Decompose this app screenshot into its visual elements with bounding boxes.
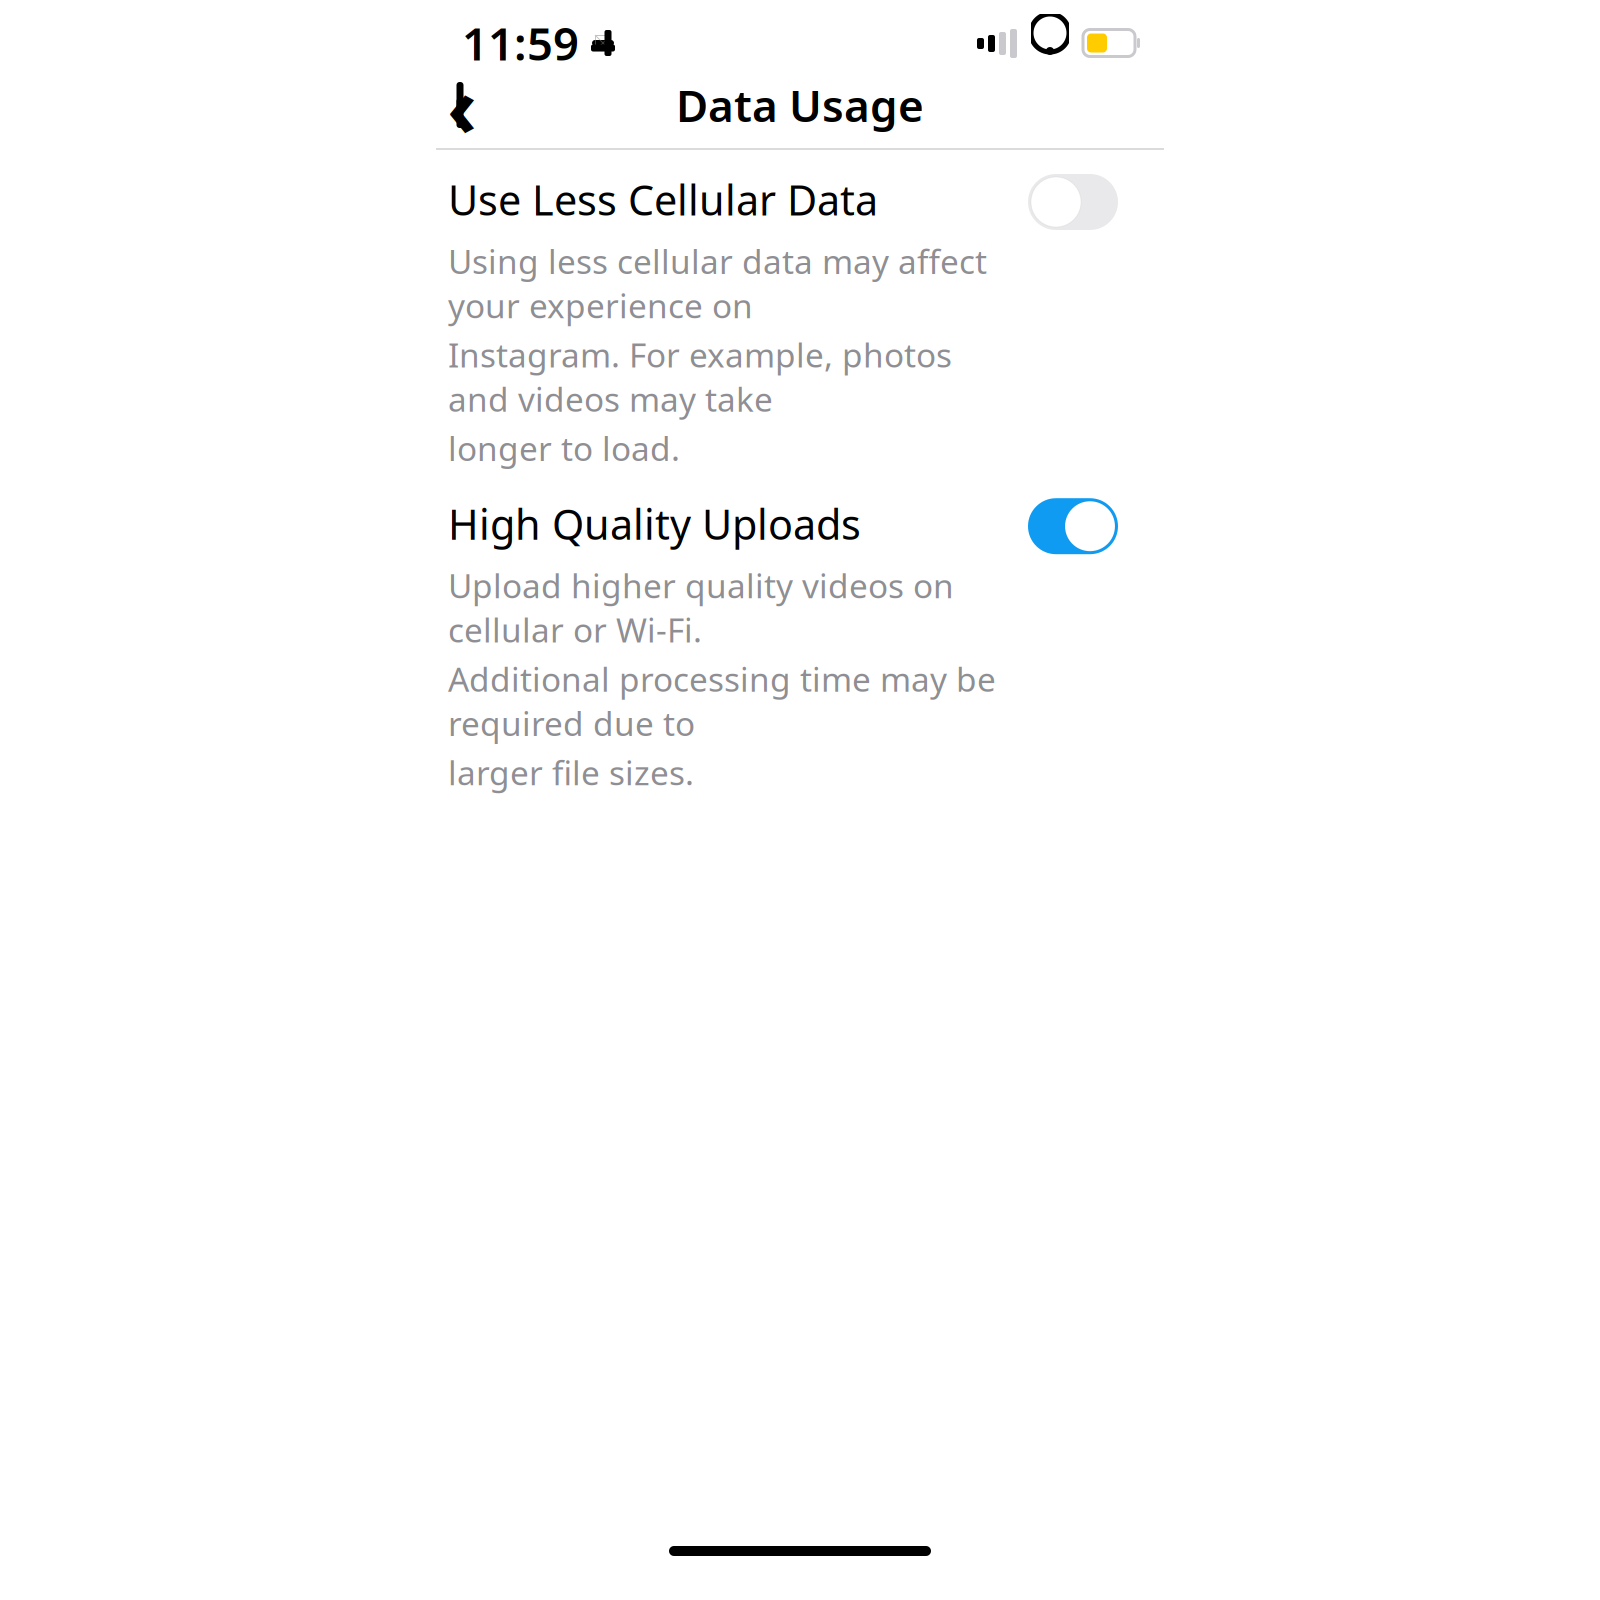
staticText: ‹ <box>447 50 477 160</box>
staticText: Instagram. For example, photos and video… <box>448 332 952 421</box>
staticText: larger file sizes. <box>448 750 694 794</box>
staticText: High Quality Uploads <box>448 496 861 551</box>
staticText: 11:59 <box>462 13 579 73</box>
staticText: Upload higher quality videos on cellular… <box>448 563 954 652</box>
staticText: Using less cellular data may affect your… <box>448 239 987 327</box>
staticText: Use Less Cellular Data <box>448 172 878 227</box>
button[interactable]: High Quality Uploads <box>0 496 1600 794</box>
button[interactable]: Back <box>430 73 494 137</box>
button[interactable]: Use Less Cellular Data <box>0 172 1600 470</box>
staticText: Data Usage <box>676 76 924 134</box>
staticText: Additional processing time may be requir… <box>448 657 996 745</box>
image <box>595 35 611 51</box>
staticText: longer to load. <box>448 426 680 470</box>
